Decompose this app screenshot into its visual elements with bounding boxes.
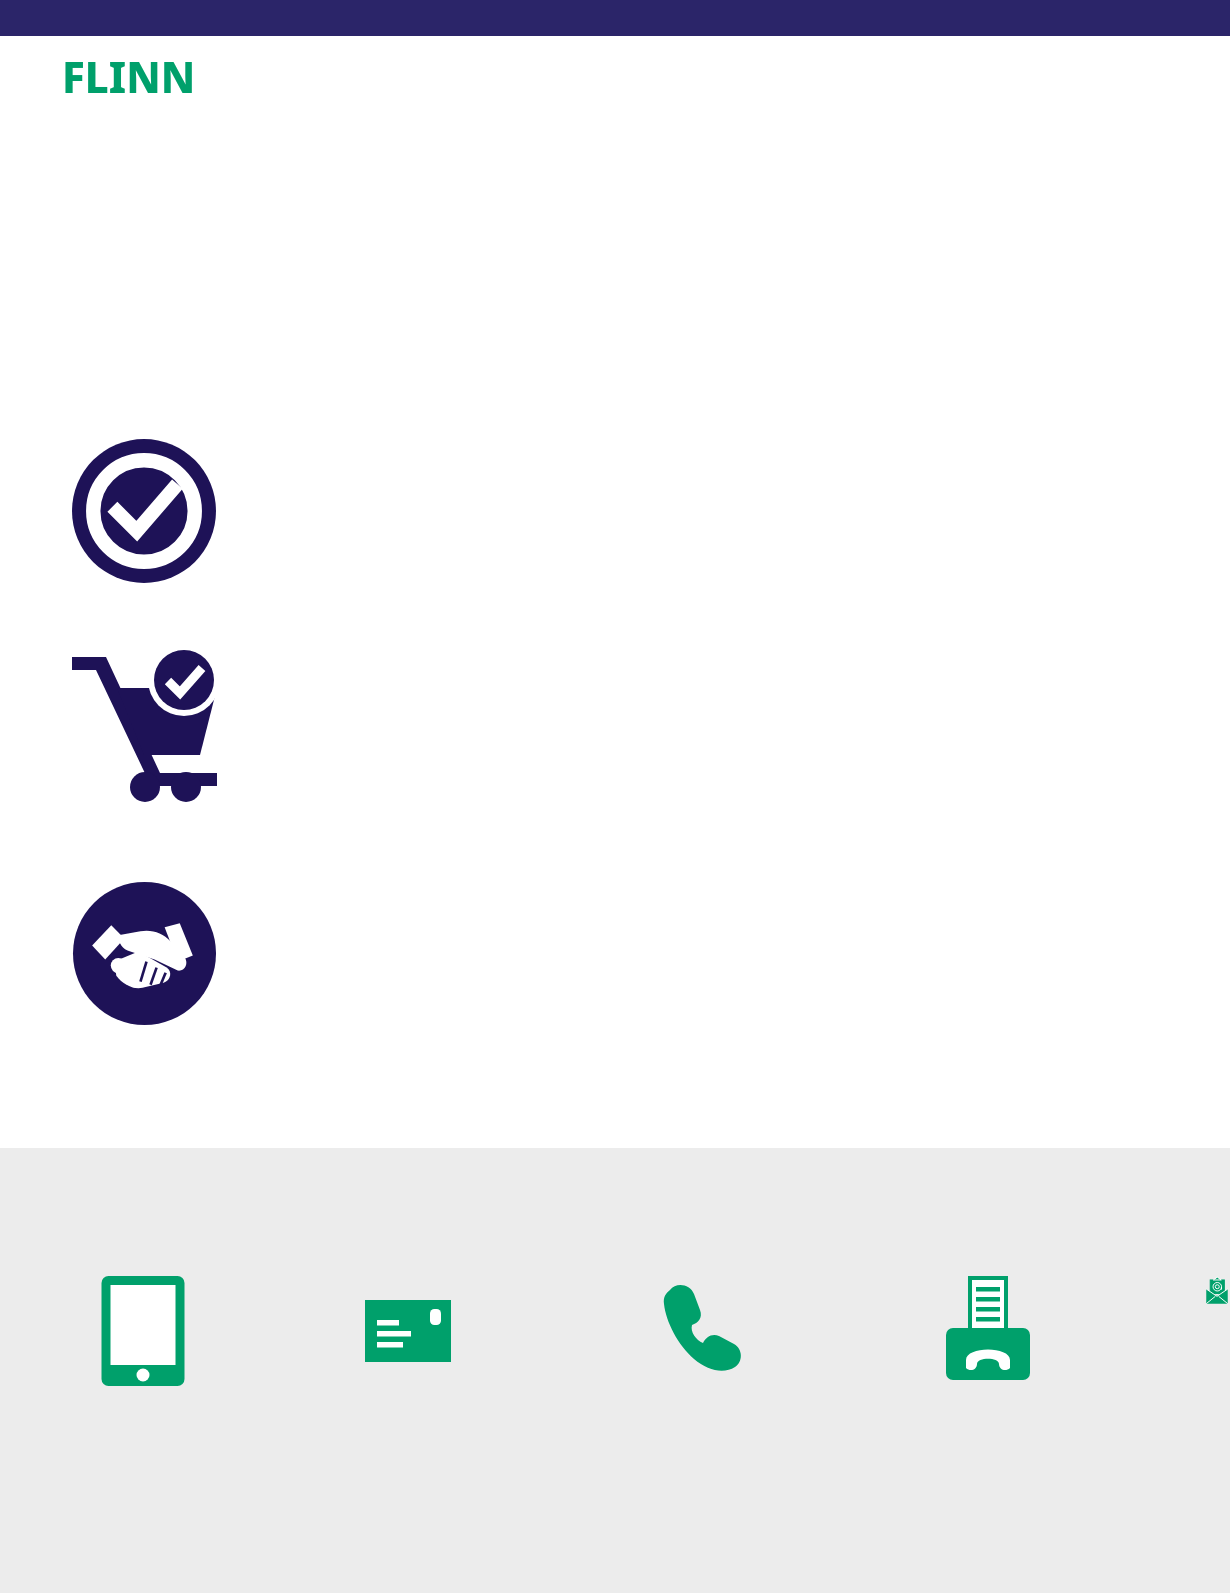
staticText: FLINN <box>62 48 196 105</box>
button[interactable]: Fax <box>942 1276 1034 1386</box>
button[interactable]: Partnership <box>73 882 216 1025</box>
button[interactable]: Email <box>1204 1276 1230 1386</box>
button[interactable]: Mail <box>362 1276 454 1386</box>
button[interactable]: Order online <box>72 650 217 802</box>
button[interactable]: Phone <box>652 1276 744 1386</box>
button[interactable]: FLINN <box>62 48 196 105</box>
button[interactable]: Website <box>97 1276 189 1386</box>
button[interactable]: Verified <box>72 439 216 583</box>
